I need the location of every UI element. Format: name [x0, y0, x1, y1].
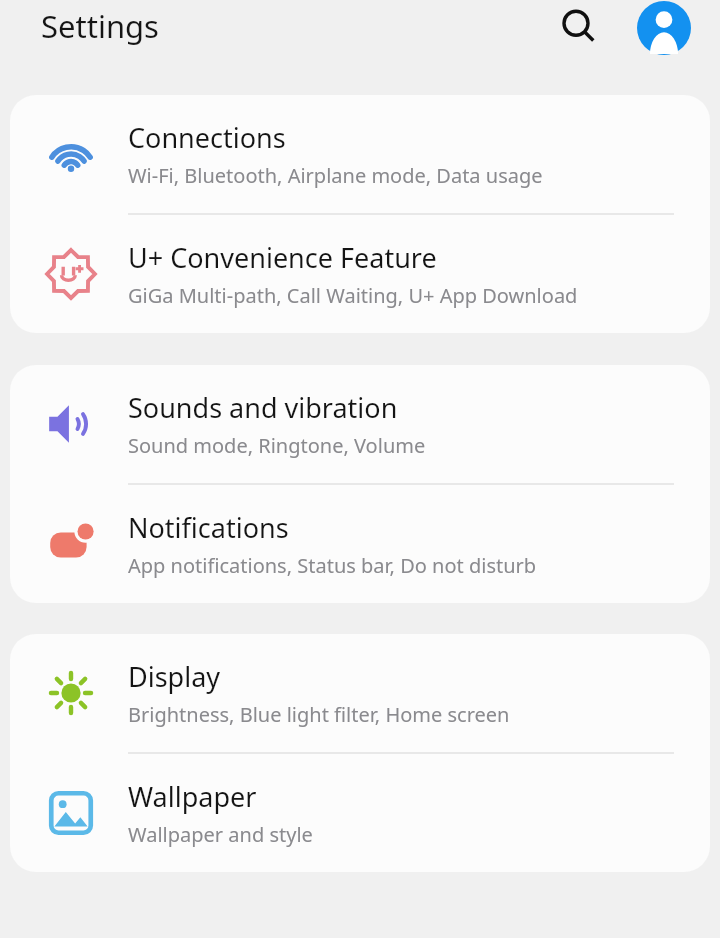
button[interactable]: Sounds and vibration	[10, 365, 710, 483]
staticText: Wallpaper	[128, 778, 257, 815]
staticText: Sound mode, Ringtone, Volume	[128, 432, 426, 459]
button[interactable]: Notifications	[10, 485, 710, 603]
button[interactable]: Account	[636, 0, 692, 56]
button[interactable]: Display	[10, 634, 710, 752]
staticText: Notifications	[128, 509, 289, 546]
staticText: Sounds and vibration	[128, 389, 398, 426]
button[interactable]: Search	[552, 0, 608, 56]
staticText: App notifications, Status bar, Do not di…	[128, 552, 537, 579]
button[interactable]: Wallpaper	[10, 754, 710, 872]
staticText: U+ Convenience Feature	[128, 239, 437, 276]
staticText: Connections	[128, 119, 286, 156]
staticText: Settings	[41, 5, 159, 47]
staticText: GiGa Multi-path, Call Waiting, U+ App Do…	[128, 282, 578, 309]
staticText: Display	[128, 658, 221, 695]
button[interactable]: Connections	[10, 95, 710, 213]
staticText: Brightness, Blue light filter, Home scre…	[128, 701, 510, 728]
button[interactable]: U+ Convenience Feature	[10, 215, 710, 333]
staticText: Wallpaper and style	[128, 821, 313, 848]
staticText: Wi-Fi, Bluetooth, Airplane mode, Data us…	[128, 162, 543, 189]
